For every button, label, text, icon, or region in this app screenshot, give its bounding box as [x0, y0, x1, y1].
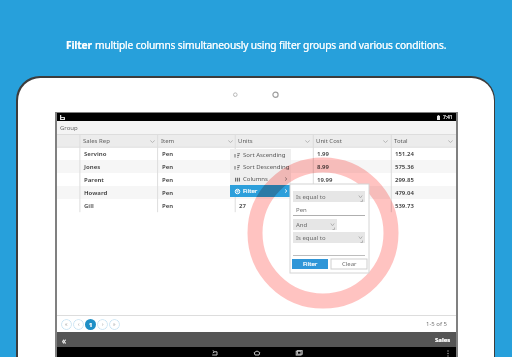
staticText: Jones: [84, 163, 101, 171]
staticText: Pen: [162, 189, 174, 197]
button[interactable]: [57, 147, 456, 160]
button[interactable]: [57, 160, 456, 173]
staticText: Pen: [162, 202, 174, 210]
staticText: Pen: [296, 206, 307, 214]
button[interactable]: Sort Descending: [230, 161, 291, 173]
staticText: Pen: [162, 150, 174, 158]
button[interactable]: Filter: [292, 259, 328, 269]
button[interactable]: 1: [84, 319, 96, 330]
button[interactable]: Is equal to: [293, 191, 365, 202]
button[interactable]: Home: [251, 347, 263, 357]
staticText: Is equal to: [296, 193, 326, 201]
staticText: Sales Rep: [83, 137, 110, 145]
staticText: 16: [239, 189, 246, 197]
staticText: 29.94: [317, 189, 333, 197]
staticText: 575.36: [395, 163, 414, 171]
button[interactable]: Item: [158, 135, 236, 147]
staticText: Filter: [66, 38, 95, 52]
staticText: Columns: [243, 175, 268, 183]
button[interactable]: Units: [235, 135, 313, 147]
button[interactable]: Recents: [293, 347, 305, 357]
staticText: 76: [239, 150, 246, 158]
staticText: 479.04: [395, 189, 414, 197]
staticText: And: [296, 221, 308, 229]
button[interactable]: Total: [391, 135, 456, 147]
staticText: multiple columns simultaneously using fi…: [95, 38, 447, 52]
staticText: 19.99: [317, 176, 333, 184]
button[interactable]: [57, 199, 456, 212]
staticText: Filter: [303, 260, 318, 268]
staticText: Sort Ascending: [243, 151, 286, 159]
staticText: Gill: [84, 202, 94, 210]
staticText: Clear: [342, 260, 357, 268]
staticText: »: [113, 321, 116, 328]
staticText: 27: [239, 202, 246, 210]
staticText: 1.99: [317, 150, 329, 158]
staticText: Filter: [243, 187, 258, 195]
button[interactable]: «: [60, 319, 72, 330]
staticText: Units: [238, 137, 253, 145]
button[interactable]: ‹: [72, 319, 84, 330]
button[interactable]: Columns: [230, 173, 291, 185]
staticText: 1-5 of 5: [426, 320, 448, 328]
button[interactable]: [57, 173, 456, 186]
staticText: Unit Cost: [316, 137, 342, 145]
staticText: Sales: [435, 336, 451, 344]
staticText: Item: [161, 137, 175, 145]
staticText: Total: [394, 137, 408, 145]
staticText: «: [65, 321, 68, 328]
staticText: 8.99: [317, 163, 329, 171]
staticText: Parent: [84, 176, 104, 184]
button[interactable]: Filter: [230, 185, 291, 197]
staticText: Pen: [162, 163, 174, 171]
staticText: 299.85: [395, 176, 414, 184]
staticText: 539.73: [395, 202, 414, 210]
button[interactable]: And: [293, 219, 337, 230]
button[interactable]: Sort Ascending: [230, 149, 291, 161]
staticText: Pen: [162, 176, 174, 184]
staticText: 15: [239, 176, 246, 184]
button[interactable]: »: [108, 319, 120, 330]
button[interactable]: More options: [444, 349, 452, 357]
staticText: Servino: [84, 150, 107, 158]
button[interactable]: Clear: [331, 259, 367, 269]
staticText: 7:41: [443, 114, 453, 121]
staticText: Howard: [84, 189, 108, 197]
staticText: ›: [102, 321, 104, 328]
button[interactable]: Pen: [293, 204, 365, 215]
button[interactable]: Back: [57, 333, 71, 347]
staticText: Sort Descending: [243, 163, 290, 171]
staticText: «: [62, 335, 67, 346]
button[interactable]: Unit Cost: [313, 135, 391, 147]
staticText: Is equal to: [296, 234, 326, 242]
button[interactable]: ›: [96, 319, 108, 330]
staticText: 64: [239, 163, 246, 171]
staticText: Group: [60, 124, 78, 132]
button[interactable]: Sales Rep: [80, 135, 158, 147]
button[interactable]: [57, 186, 456, 199]
staticText: ‹: [78, 321, 80, 328]
staticText: 151.24: [395, 150, 414, 158]
button[interactable]: Back: [209, 347, 221, 357]
button[interactable]: Is equal to: [293, 232, 365, 243]
staticText: 1: [89, 321, 93, 329]
